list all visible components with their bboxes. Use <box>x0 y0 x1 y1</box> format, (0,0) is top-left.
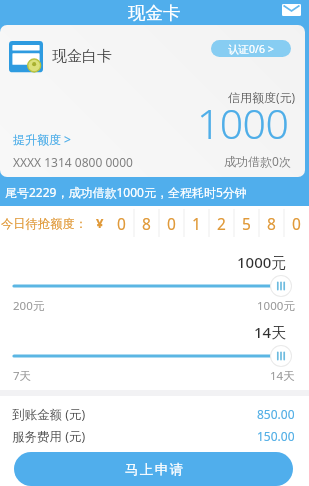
staticText: 1 <box>192 213 201 234</box>
staticText: 到账金额 (元) <box>12 406 86 423</box>
staticText: 8 <box>267 213 276 234</box>
staticText: 尾号2229，成功借款1000元，全程耗时5分钟 <box>5 184 247 200</box>
staticText: 成功借款0次 <box>224 153 291 169</box>
button[interactable]: 认证0/6 > <box>211 40 291 57</box>
staticText: 现金白卡 <box>52 47 112 66</box>
staticText: 0 <box>292 213 301 234</box>
staticText: 150.00 <box>257 428 295 444</box>
staticText: ¥ <box>96 214 104 232</box>
staticText: 8 <box>142 213 151 234</box>
staticText: 今日待抢额度： <box>1 216 88 231</box>
staticText: 信用额度(元) <box>228 89 296 105</box>
staticText: 14天 <box>270 368 295 384</box>
staticText: 1000 <box>197 95 289 151</box>
staticText: 现金卡 <box>128 2 181 24</box>
staticText: 5 <box>242 213 251 234</box>
staticText: 7天 <box>13 368 32 384</box>
staticText: 服务费用 (元) <box>12 428 86 445</box>
button[interactable]: 提升额度 > <box>13 131 71 147</box>
button[interactable]: 马上申请 <box>14 452 293 486</box>
staticText: 2 <box>217 213 226 234</box>
staticText: 1000元 <box>257 298 295 314</box>
staticText: XXXX 1314 0800 0000 <box>13 154 133 170</box>
staticText: 马上申请 <box>124 461 184 478</box>
staticText: 14天 <box>254 322 287 342</box>
staticText: 0 <box>117 213 126 234</box>
staticText: 850.00 <box>257 406 295 422</box>
staticText: 0 <box>167 213 176 234</box>
staticText: 认证0/6 > <box>228 42 274 56</box>
button[interactable]: Messages <box>282 4 301 16</box>
staticText: 200元 <box>13 298 45 314</box>
staticText: 1000元 <box>237 252 287 272</box>
